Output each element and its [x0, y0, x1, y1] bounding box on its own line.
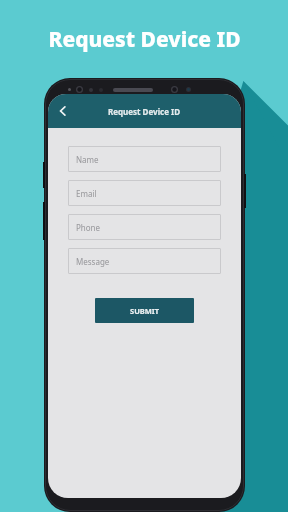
staticText: SUBMIT: [130, 306, 160, 316]
button[interactable]: Name: [68, 146, 221, 172]
staticText: Email: [76, 188, 97, 199]
button[interactable]: Email: [68, 180, 221, 206]
staticText: Name: [76, 154, 99, 165]
staticText: Message: [76, 256, 110, 267]
button[interactable]: Message: [68, 248, 221, 274]
staticText: Request Device ID: [48, 25, 241, 54]
staticText: Request Device ID: [108, 106, 181, 117]
button[interactable]: Phone: [68, 214, 221, 240]
staticText: Phone: [76, 222, 101, 233]
button[interactable]: SUBMIT: [95, 298, 194, 323]
button[interactable]: Back: [48, 96, 78, 126]
